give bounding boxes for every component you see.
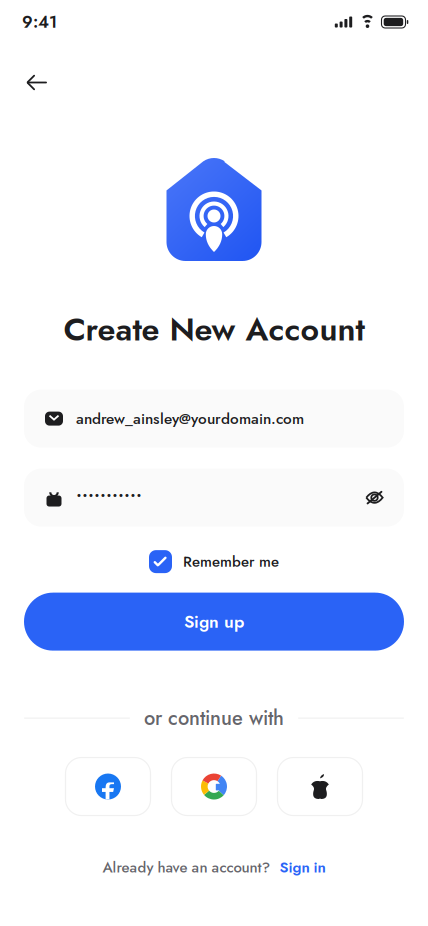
button[interactable]: Sign up bbox=[24, 593, 404, 651]
staticText: or continue with bbox=[144, 704, 284, 732]
button[interactable]: Back bbox=[15, 60, 59, 104]
staticText: andrew_ainsley@yourdomain.com bbox=[76, 407, 304, 430]
button[interactable]: Continue with Apple bbox=[277, 757, 362, 815]
button[interactable]: Remember me bbox=[149, 548, 279, 576]
staticText: Already have an account? bbox=[102, 856, 270, 878]
staticText: 9:41 bbox=[22, 10, 57, 34]
staticText: Create New Account bbox=[63, 306, 364, 353]
staticText: Remember me bbox=[183, 551, 279, 572]
button[interactable]: Continue with Google bbox=[171, 757, 256, 815]
button[interactable]: Sign in bbox=[279, 856, 325, 878]
button[interactable]: Continue with Facebook bbox=[65, 757, 150, 815]
staticText: Sign in bbox=[279, 856, 325, 878]
staticText: ••••••••••• bbox=[76, 484, 142, 511]
staticText: Sign up bbox=[184, 609, 244, 634]
